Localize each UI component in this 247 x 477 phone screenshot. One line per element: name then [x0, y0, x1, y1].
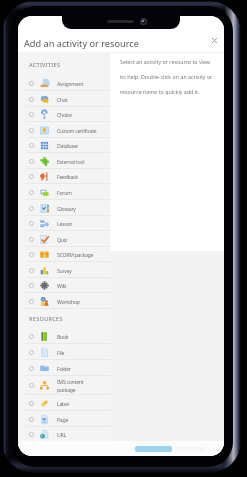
staticText: SCORM package [57, 251, 94, 258]
staticText: Chat [57, 96, 68, 103]
button[interactable]: Assignment [18, 75, 110, 91]
button[interactable]: Choice [18, 106, 110, 122]
button[interactable]: Folder [18, 360, 110, 376]
button[interactable] [135, 446, 172, 452]
staticText: Label [57, 400, 69, 407]
staticText: Wiki [57, 282, 67, 289]
staticText: Forum [57, 189, 72, 196]
button[interactable]: Book [18, 328, 110, 344]
button[interactable]: Database [18, 137, 110, 153]
button[interactable]: External tool [18, 153, 110, 169]
staticText: Add an activity or resource [24, 37, 139, 50]
button[interactable]: Survey [18, 262, 110, 278]
staticText: File [57, 349, 65, 356]
button[interactable]: Custom certificate [18, 122, 110, 138]
staticText: IMS content package [57, 378, 87, 393]
button[interactable]: Page [18, 411, 110, 427]
staticText: RESOURCES [29, 315, 63, 323]
button[interactable]: URL [18, 426, 110, 442]
staticText: URL [57, 431, 66, 438]
staticText: Custom certificate [57, 127, 97, 134]
staticText: Survey [57, 267, 72, 274]
button[interactable]: Glossary [18, 200, 110, 216]
staticText: Page [57, 416, 69, 423]
staticText: External tool [57, 158, 85, 165]
staticText: Select an activity or resource to view i… [120, 58, 216, 95]
staticText: Folder [57, 365, 71, 372]
button[interactable]: Label [18, 395, 110, 411]
button[interactable]: Forum [18, 184, 110, 200]
button[interactable]: Quiz [18, 231, 110, 247]
staticText: Book [57, 333, 69, 340]
staticText: Choice [57, 111, 72, 118]
button[interactable]: Chat [18, 91, 110, 107]
button[interactable]: Close [207, 33, 221, 47]
staticText: Glossary [57, 205, 76, 212]
staticText: Feedback [57, 173, 78, 180]
button[interactable]: File [18, 344, 110, 360]
staticText: Assignment [57, 80, 84, 87]
button[interactable]: Wiki [18, 277, 110, 293]
button[interactable]: Lesson [18, 215, 110, 231]
button[interactable]: SCORM package [18, 246, 110, 262]
button[interactable]: Workshop [18, 293, 110, 309]
staticText: Database [57, 142, 78, 149]
button[interactable]: Feedback [18, 168, 110, 184]
button[interactable]: IMS content package [18, 376, 110, 394]
staticText: Workshop [57, 298, 80, 305]
staticText: Quiz [57, 236, 67, 243]
staticText: ACTIVITIES [29, 61, 61, 69]
staticText: Lesson [57, 220, 73, 227]
